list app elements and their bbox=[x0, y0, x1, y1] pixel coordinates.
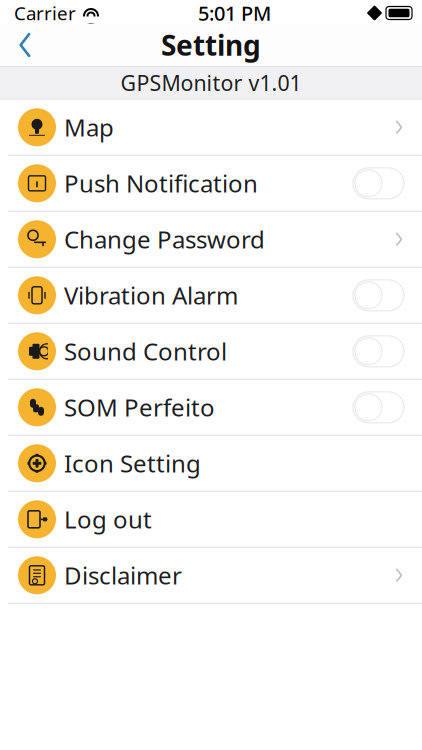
staticText: Push Notification bbox=[64, 167, 258, 199]
staticText: Carrier bbox=[14, 1, 76, 25]
button[interactable]: Icon Setting bbox=[0, 436, 422, 492]
staticText: Map bbox=[64, 111, 114, 143]
button[interactable]: Map bbox=[0, 100, 422, 156]
button[interactable]: Disclaimer bbox=[0, 548, 422, 604]
staticText: Log out bbox=[64, 503, 152, 535]
staticText: SOM Perfeito bbox=[64, 391, 215, 423]
staticText: Icon Setting bbox=[64, 447, 201, 479]
button[interactable]: Sound Control bbox=[0, 324, 422, 380]
button[interactable]: Vibration Alarm bbox=[0, 268, 422, 324]
button[interactable]: Log out bbox=[0, 492, 422, 548]
button[interactable]: SOM Perfeito bbox=[0, 380, 422, 436]
staticText: 5:01 PM bbox=[198, 0, 271, 26]
staticText: Sound Control bbox=[64, 335, 227, 367]
button[interactable]: Change Password bbox=[0, 212, 422, 268]
staticText: GPSMonitor v1.01 bbox=[120, 69, 301, 97]
staticText: Change Password bbox=[64, 223, 265, 255]
staticText: Vibration Alarm bbox=[64, 279, 238, 311]
button[interactable]: Push Notification bbox=[0, 156, 422, 212]
staticText: Setting bbox=[161, 26, 261, 64]
staticText: Disclaimer bbox=[64, 559, 182, 591]
button[interactable]: Back bbox=[10, 28, 40, 62]
